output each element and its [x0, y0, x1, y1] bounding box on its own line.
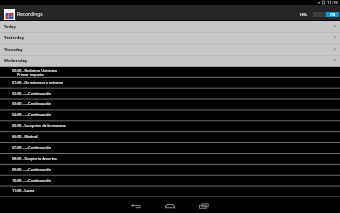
staticText: 04:00 - ....Continuación	[12, 112, 52, 117]
staticText: 11:19	[327, 0, 338, 5]
staticText: 03:00 - ....Continuación	[12, 101, 52, 106]
button[interactable]: Back	[122, 197, 150, 213]
button[interactable]: 00:00 - Noticiero Univision	[0, 67, 340, 78]
button[interactable]: 08:00 - Despierta America	[0, 154, 340, 165]
staticText: 07:00 - ....Continuación	[12, 145, 52, 150]
staticText: 00:00 - Noticiero Univision	[12, 68, 58, 73]
staticText: Recordings	[17, 11, 43, 18]
staticText: Wednesday	[4, 58, 28, 63]
button[interactable]: 09:00 - ....Continuación	[0, 165, 340, 176]
button[interactable]: 03:00 - ....Continuación	[0, 99, 340, 110]
button[interactable]: Yesterday	[0, 32, 340, 43]
button[interactable]: 02:00 - ....Continuación	[0, 89, 340, 100]
button[interactable]: Today	[0, 21, 340, 32]
staticText: Yesterday	[4, 35, 25, 40]
staticText: 06:00 - Matinal	[12, 134, 38, 139]
staticText: 11:00 - Laura	[12, 188, 35, 193]
button[interactable]: 05:00 - La opcion de la manana	[0, 121, 340, 132]
staticText: HD:	[300, 12, 308, 18]
staticText: 01:00 - De extremo a extremo	[12, 80, 64, 85]
button[interactable]: 10:00 - ....Continuación	[0, 176, 340, 187]
staticText: Primer impacto	[17, 72, 44, 77]
staticText: 02:00 - ....Continuación	[12, 91, 52, 96]
staticText: 10:00 - ....Continuación	[12, 178, 52, 183]
button[interactable]: 07:00 - ....Continuación	[0, 143, 340, 154]
button[interactable]: 06:00 - Matinal	[0, 132, 340, 143]
button[interactable]: Wednesday	[0, 55, 340, 66]
staticText: 09:00 - ....Continuación	[12, 167, 52, 172]
button[interactable]: ON	[313, 12, 339, 17]
staticText: 05:00 - La opcion de la manana	[12, 123, 66, 128]
staticText: Thursday	[4, 47, 23, 52]
button[interactable]: Thursday	[0, 44, 340, 55]
button[interactable]: 01:00 - De extremo a extremo	[0, 78, 340, 89]
button[interactable]: Recent apps	[190, 197, 218, 213]
button[interactable]: 04:00 - ....Continuación	[0, 110, 340, 121]
button[interactable]: Home	[156, 197, 184, 213]
staticText: 08:00 - Despierta America	[12, 156, 57, 161]
button[interactable]: 11:00 - Laura	[0, 186, 340, 197]
staticText: ON	[330, 12, 336, 17]
staticText: Today	[4, 24, 16, 29]
